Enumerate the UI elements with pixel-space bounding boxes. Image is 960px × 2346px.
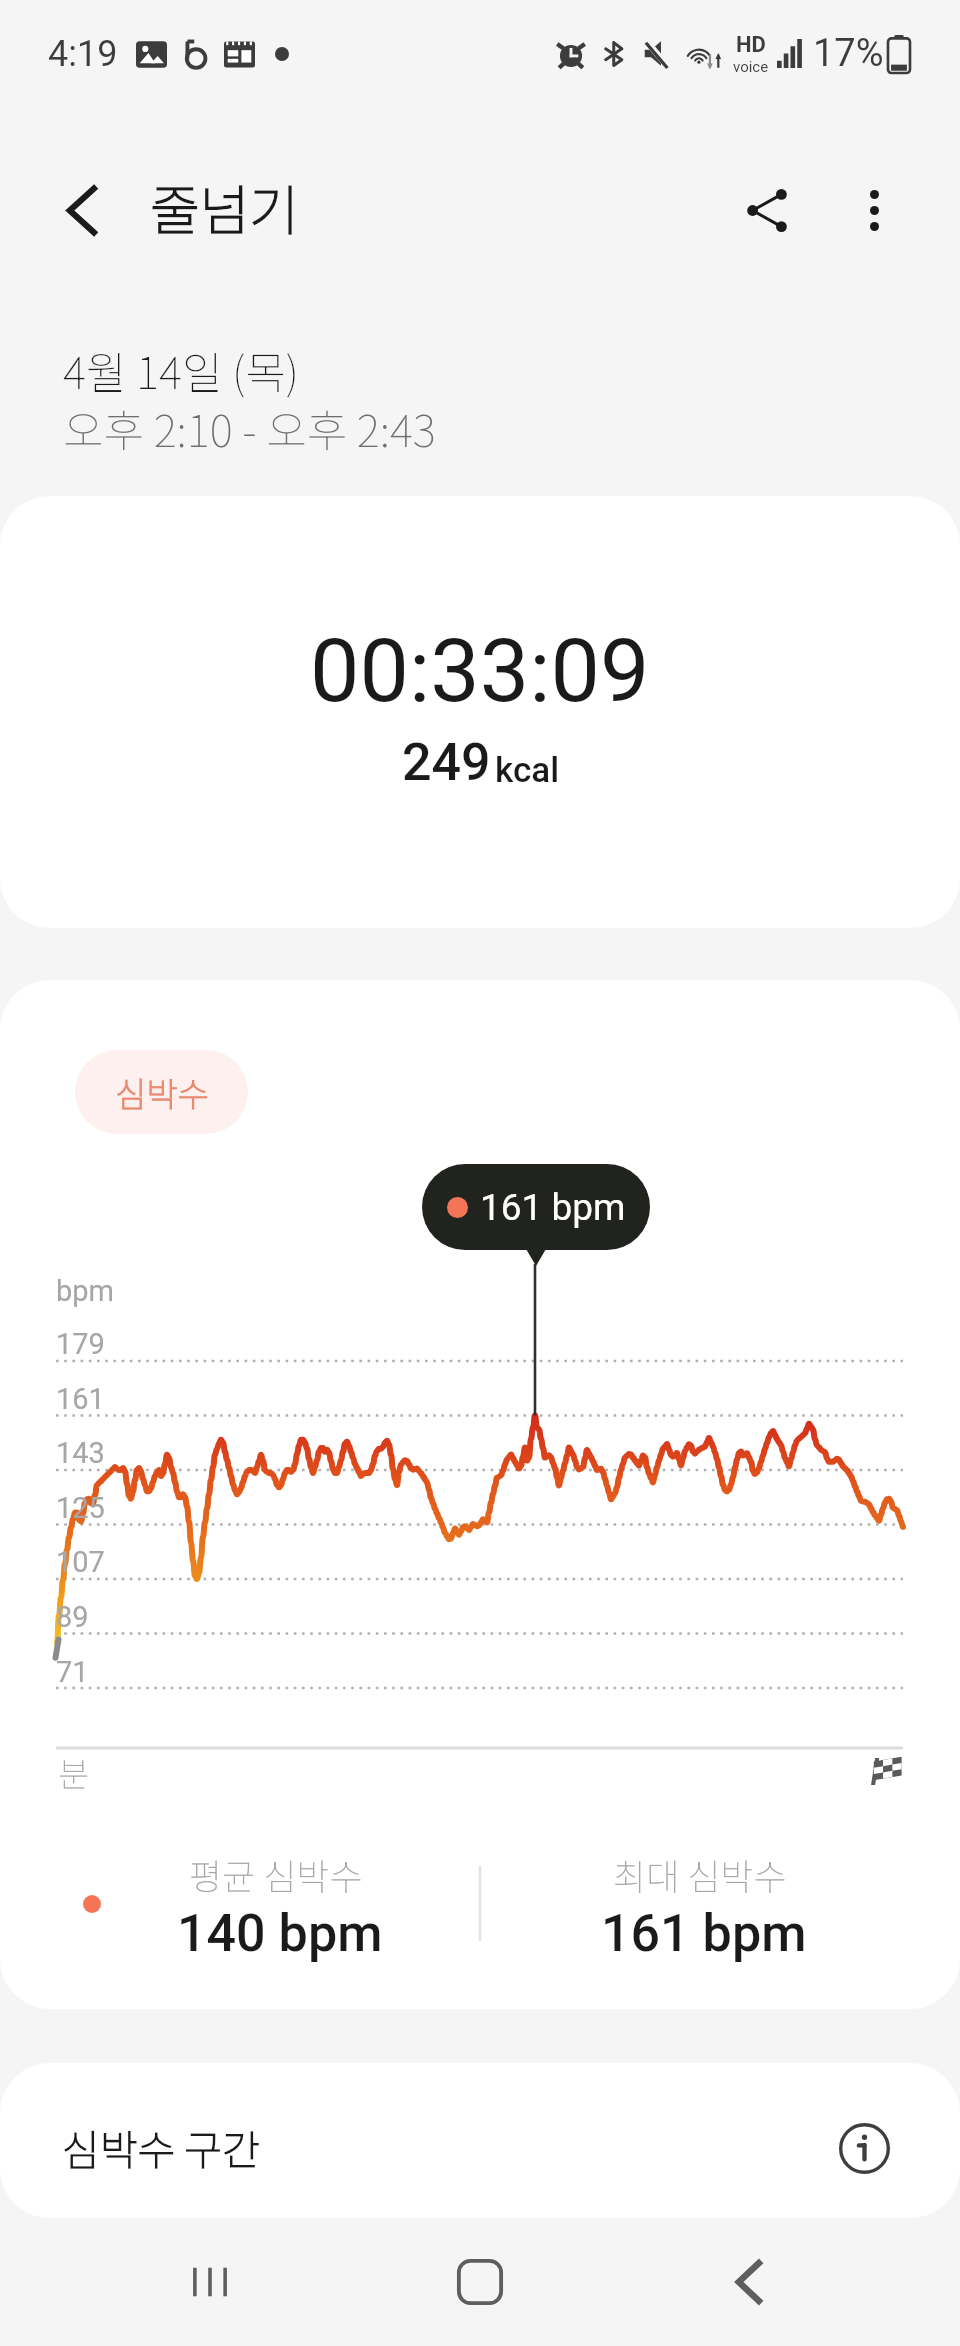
staticText: HD [736, 32, 766, 58]
staticText: voice [733, 58, 769, 76]
staticText: 4:19 [48, 33, 118, 75]
staticText: 평균 심박수 [189, 1848, 363, 1900]
staticText: 4월 14일 (목) [63, 338, 299, 402]
staticText: 161 bpm [480, 1186, 626, 1229]
button[interactable]: Back [36, 150, 130, 270]
staticText: 107 [56, 1545, 105, 1579]
staticText: 140 bpm [177, 1903, 383, 1964]
staticText: 249 [402, 732, 491, 793]
staticText: 심박수 [115, 1068, 209, 1117]
staticText: 125 [56, 1491, 105, 1525]
staticText: 심박수 구간 [62, 2117, 260, 2176]
staticText: 분 [58, 1748, 90, 1797]
staticText: 161 [56, 1382, 105, 1416]
button[interactable]: Recents [150, 2222, 270, 2342]
staticText: 00:33:09 [310, 619, 650, 722]
button[interactable]: Back [690, 2222, 810, 2342]
staticText: 143 [56, 1436, 105, 1470]
staticText: 71 [56, 1655, 89, 1689]
button[interactable]: Home [420, 2222, 540, 2342]
staticText: 161 bpm [601, 1903, 807, 1964]
staticText: 줄넘기 [150, 167, 300, 245]
staticText: 최대 심박수 [613, 1848, 787, 1900]
button[interactable]: 심박수 구간 [0, 2063, 960, 2218]
staticText: kcal [495, 750, 560, 791]
staticText: 89 [56, 1600, 89, 1634]
button[interactable]: 심박수 [75, 1050, 248, 1134]
button[interactable]: Share [712, 150, 822, 270]
staticText: bpm [56, 1274, 114, 1308]
staticText: 오후 2:10 - 오후 2:43 [63, 396, 436, 460]
other: Info [839, 2123, 890, 2174]
staticText: 17% [813, 31, 884, 76]
button[interactable]: More options [822, 150, 926, 270]
button[interactable]: 00:33:09 [0, 496, 960, 928]
staticText: 179 [56, 1327, 105, 1361]
